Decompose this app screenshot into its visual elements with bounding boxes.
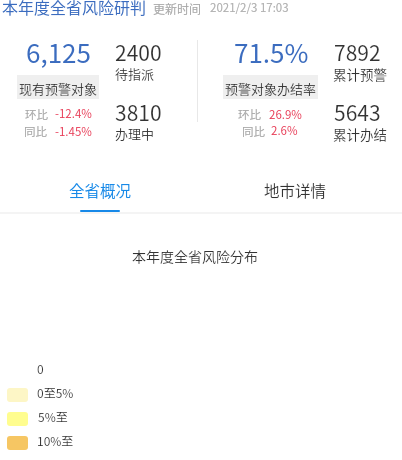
staticText: 办理中 (115, 124, 155, 143)
staticText: 5643 (334, 97, 381, 127)
staticText: 5%至 (38, 408, 68, 425)
button[interactable]: 全省概况 (5, 172, 198, 213)
staticText: 2.6% (271, 122, 298, 139)
staticText: -12.4% (55, 105, 92, 122)
staticText: 地市详情 (264, 179, 327, 201)
staticText: 环比 (25, 106, 48, 123)
staticText: 待指派 (115, 64, 155, 83)
staticText: 本年度全省风险分布 (132, 246, 258, 266)
staticText: 2021/2/3 17:03 (210, 0, 289, 16)
staticText: -1.45% (55, 123, 92, 140)
staticText: 累计办结 (333, 124, 387, 144)
staticText: 10%至 (37, 432, 74, 449)
staticText: 累计预警 (333, 64, 387, 84)
staticText: 更新时间 (153, 0, 202, 17)
staticText: 0至5% (37, 384, 74, 401)
staticText: 26.9% (269, 106, 302, 123)
staticText: 现有预警对象 (19, 79, 98, 98)
staticText: 71.5% (234, 33, 309, 71)
staticText: 3810 (115, 97, 162, 127)
staticText: 2400 (115, 37, 162, 67)
staticText: 本年度全省风险研判 (2, 0, 147, 18)
staticText: 6,125 (26, 33, 91, 71)
staticText: 预警对象办结率 (225, 79, 317, 98)
staticText: 0 (37, 360, 44, 377)
staticText: 同比 (242, 123, 265, 140)
staticText: 同比 (24, 123, 47, 140)
button[interactable]: 地市详情 (198, 172, 391, 213)
staticText: 环比 (238, 106, 261, 123)
staticText: 全省概况 (69, 179, 132, 201)
staticText: 7892 (334, 37, 381, 67)
